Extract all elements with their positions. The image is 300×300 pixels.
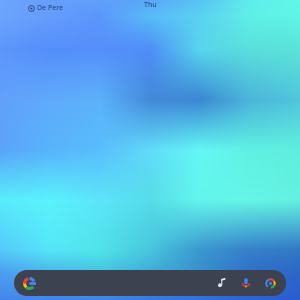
button[interactable]: Google Lens [264,277,277,290]
button[interactable]: Search a song [216,277,228,289]
staticText: Thu [144,0,157,10]
button[interactable]: Google Search [14,270,286,296]
button[interactable]: De Pere [28,3,64,13]
other: Google Search [23,277,36,290]
button[interactable]: Voice search [240,277,252,289]
staticText: De Pere [37,3,64,13]
